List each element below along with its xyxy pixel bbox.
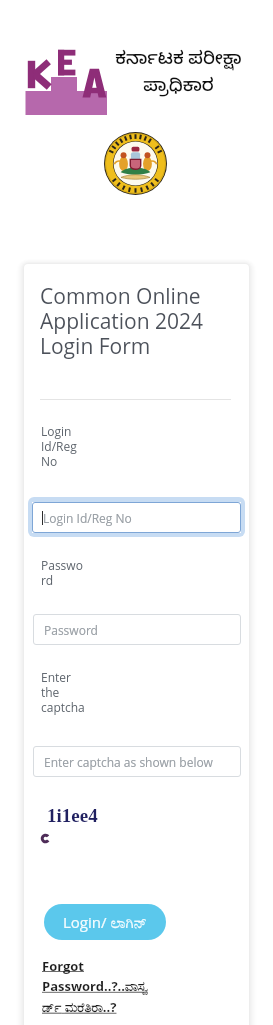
staticText: Login Id/Reg No xyxy=(43,510,132,526)
button[interactable]: Forgot Password..?..ಪಾಸ್ವ ರ್ಡ್ ಮರೆತಿರಾ..… xyxy=(42,957,182,1016)
staticText: Login/ ಲಾಗಿನ್ xyxy=(63,912,147,932)
staticText: Forgot Password..?..ಪಾಸ್ವ ರ್ಡ್ ಮರೆತಿರಾ..… xyxy=(42,957,148,1016)
button[interactable] xyxy=(28,497,245,537)
staticText: Login Id/Reg No xyxy=(41,423,86,469)
staticText: Enter the captcha xyxy=(41,669,86,715)
button[interactable]: Login/ ಲಾಗಿನ್ xyxy=(44,904,166,940)
staticText: ಕರ್ನಾಟಕ ಪರೀಕ್ಷಾ ಪ್ರಾಧಿಕಾರ xyxy=(113,45,244,100)
staticText: Password xyxy=(44,622,98,638)
staticText: Common Online Application 2024 Login For… xyxy=(40,282,204,360)
staticText: Password xyxy=(41,557,86,588)
staticText: Enter captcha as shown below xyxy=(44,754,213,770)
other: Government of Karnataka emblem xyxy=(104,132,167,195)
button[interactable]: Enter captcha as shown below xyxy=(33,746,241,777)
button[interactable]: Password xyxy=(33,614,241,645)
button[interactable]: Refresh captcha xyxy=(40,833,51,844)
staticText: 1i1ee4 xyxy=(47,805,98,826)
